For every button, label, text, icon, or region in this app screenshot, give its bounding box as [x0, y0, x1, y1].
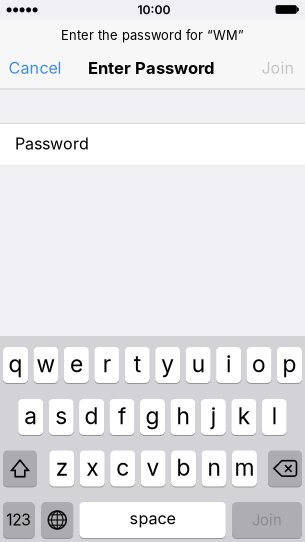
staticText: 10:00	[137, 2, 170, 17]
staticText: p	[282, 350, 296, 378]
button[interactable]: u	[186, 347, 211, 383]
button[interactable]: m	[232, 450, 257, 486]
staticText: m	[234, 453, 254, 481]
button[interactable]: c	[110, 450, 135, 486]
staticText: v	[147, 453, 160, 481]
staticText: Enter Password	[88, 58, 214, 78]
staticText: c	[116, 453, 129, 481]
staticText: Join	[252, 511, 282, 529]
button[interactable]: k	[231, 399, 256, 435]
staticText: s	[55, 402, 67, 430]
staticText: o	[252, 350, 266, 378]
button[interactable]: g	[140, 399, 165, 435]
staticText: h	[176, 402, 189, 430]
staticText: b	[177, 453, 191, 481]
staticText: y	[161, 350, 174, 378]
button[interactable]: l	[262, 399, 287, 435]
button[interactable]: Join	[242, 46, 305, 90]
staticText: q	[8, 350, 22, 378]
staticText: t	[134, 350, 141, 378]
button[interactable]: s	[49, 399, 74, 435]
staticText: Password	[15, 134, 89, 153]
staticText: d	[85, 402, 99, 430]
staticText: a	[24, 402, 37, 430]
button[interactable]: Shift	[3, 450, 37, 486]
button[interactable]: space	[79, 502, 226, 538]
button[interactable]: e	[64, 347, 89, 383]
staticText: Enter the password for “WM”	[61, 27, 244, 43]
button[interactable]: 123	[3, 502, 35, 538]
button[interactable]: r	[94, 347, 119, 383]
staticText: z	[56, 453, 68, 481]
staticText: l	[272, 402, 277, 430]
button[interactable]: Delete	[268, 450, 302, 486]
button[interactable]: Next keyboard	[41, 502, 73, 538]
staticText: x	[86, 453, 98, 481]
staticText: n	[207, 453, 220, 481]
staticText: u	[192, 350, 205, 378]
staticText: g	[145, 402, 159, 430]
staticText: Join	[261, 58, 294, 78]
staticText: k	[238, 402, 250, 430]
staticText: j	[211, 402, 216, 430]
staticText: e	[70, 350, 83, 378]
button[interactable]: p	[277, 347, 302, 383]
button[interactable]: d	[79, 399, 104, 435]
staticText: i	[226, 350, 231, 378]
staticText: Cancel	[9, 58, 62, 78]
button[interactable]: w	[33, 347, 58, 383]
button[interactable]: Cancel	[0, 46, 76, 90]
button[interactable]: Join	[232, 502, 302, 538]
button[interactable]: x	[80, 450, 105, 486]
staticText: w	[36, 350, 55, 378]
staticText: r	[103, 350, 111, 378]
button[interactable]: q	[3, 347, 28, 383]
button[interactable]: Password	[0, 123, 305, 164]
staticText: space	[130, 509, 176, 528]
button[interactable]: o	[246, 347, 271, 383]
button[interactable]: n	[201, 450, 226, 486]
staticText: 123	[6, 510, 31, 529]
button[interactable]: j	[201, 399, 226, 435]
button[interactable]: f	[109, 399, 134, 435]
button[interactable]: h	[170, 399, 195, 435]
button[interactable]: v	[141, 450, 166, 486]
button[interactable]: i	[216, 347, 241, 383]
staticText: f	[118, 402, 126, 430]
button[interactable]: y	[155, 347, 180, 383]
button[interactable]: b	[171, 450, 196, 486]
button[interactable]: t	[125, 347, 150, 383]
button[interactable]: a	[18, 399, 43, 435]
button[interactable]: z	[49, 450, 74, 486]
